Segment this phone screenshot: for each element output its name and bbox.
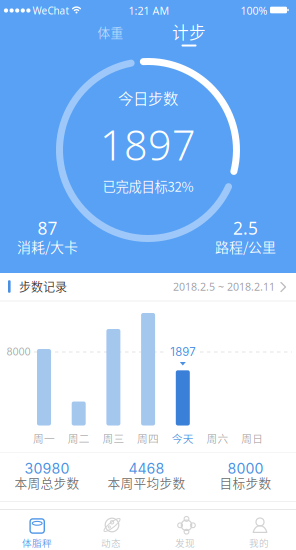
staticText: 今天 bbox=[172, 430, 194, 446]
staticText: 100% bbox=[240, 3, 267, 18]
staticText: 8000 bbox=[6, 346, 30, 358]
staticText: 发现 bbox=[175, 535, 195, 549]
staticText: 1897 bbox=[100, 116, 196, 173]
staticText: 8000 bbox=[227, 460, 263, 477]
staticText: 周二 bbox=[68, 430, 90, 446]
staticText: 路程/公里 bbox=[215, 236, 276, 257]
staticText: 今日步数 bbox=[118, 86, 178, 109]
staticText: 4468 bbox=[128, 460, 164, 477]
staticText: 本周总步数 bbox=[14, 473, 79, 492]
staticText: 动态 bbox=[101, 535, 121, 549]
staticText: 本周平均步数 bbox=[107, 473, 185, 492]
staticText: 周日 bbox=[241, 430, 263, 446]
staticText: 步数记录 bbox=[19, 278, 67, 295]
staticText: 目标步数 bbox=[219, 473, 271, 492]
staticText: 周一 bbox=[33, 430, 55, 446]
staticText: 体脂秤 bbox=[22, 535, 52, 549]
staticText: 我的 bbox=[249, 535, 269, 549]
staticText: 周六 bbox=[206, 430, 228, 446]
staticText: 2.5 bbox=[233, 216, 258, 240]
staticText: 消耗/大卡 bbox=[17, 236, 78, 257]
staticText: 周四 bbox=[137, 430, 159, 446]
staticText: 已完成目标32% bbox=[102, 176, 193, 196]
staticText: 周三 bbox=[102, 430, 124, 446]
staticText: 2018.2.5 ~ 2018.2.11 bbox=[173, 279, 275, 294]
staticText: 30980 bbox=[24, 460, 69, 477]
staticText: 体重 bbox=[97, 23, 123, 41]
staticText: 1:21 AM bbox=[128, 3, 169, 18]
staticText: 计步 bbox=[172, 20, 206, 44]
staticText: WeChat bbox=[32, 4, 69, 17]
staticText: 87 bbox=[37, 216, 57, 240]
staticText: 1897 bbox=[170, 345, 195, 359]
